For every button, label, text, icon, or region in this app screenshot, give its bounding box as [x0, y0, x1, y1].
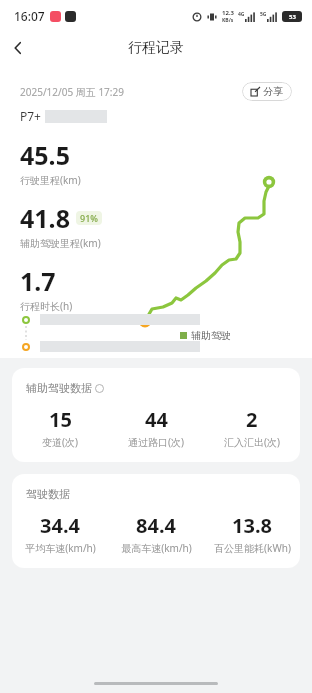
- staticText: 汇入汇出(次): [224, 435, 280, 449]
- staticText: 15: [49, 406, 72, 433]
- staticText: 2025/12/05 周五 17:29: [20, 85, 124, 99]
- staticText: 91%: [80, 212, 98, 224]
- staticText: 34.4: [40, 512, 80, 539]
- button[interactable]: 分享: [242, 82, 292, 101]
- staticText: 辅助驾驶: [191, 329, 231, 342]
- staticText: 4G: [238, 11, 245, 18]
- staticText: 行程记录: [128, 39, 184, 57]
- staticText: P7+: [20, 108, 41, 124]
- staticText: 44: [145, 406, 168, 433]
- staticText: 13.8: [232, 512, 272, 539]
- staticText: 辅助驾驶数据: [26, 381, 92, 395]
- staticText: 行程时长(h): [20, 299, 73, 313]
- button[interactable]: 驾驶数据: [12, 474, 300, 568]
- staticText: 16:07: [14, 8, 45, 24]
- button[interactable]: Back: [0, 32, 36, 64]
- staticText: 辅助驾驶里程(km): [20, 236, 101, 250]
- staticText: 12.3: [222, 9, 234, 17]
- staticText: 通过路口(次): [128, 435, 184, 449]
- staticText: 驾驶数据: [26, 487, 70, 501]
- staticText: 53: [289, 13, 296, 21]
- staticText: 最高车速(km/h): [121, 541, 192, 555]
- staticText: 1.7: [20, 264, 56, 298]
- staticText: KB/s: [222, 17, 234, 24]
- staticText: 平均车速(km/h): [25, 541, 96, 555]
- staticText: 84.4: [136, 512, 176, 539]
- staticText: 5G: [260, 11, 267, 18]
- staticText: 变道(次): [42, 435, 78, 449]
- staticText: 行驶里程(km): [20, 173, 81, 187]
- staticText: 45.5: [20, 138, 70, 172]
- staticText: 41.8: [20, 201, 70, 235]
- staticText: 百公里能耗(kWh): [214, 541, 291, 555]
- button[interactable]: 辅助驾驶数据: [12, 368, 300, 462]
- staticText: 2: [246, 406, 258, 433]
- staticText: 分享: [263, 85, 283, 98]
